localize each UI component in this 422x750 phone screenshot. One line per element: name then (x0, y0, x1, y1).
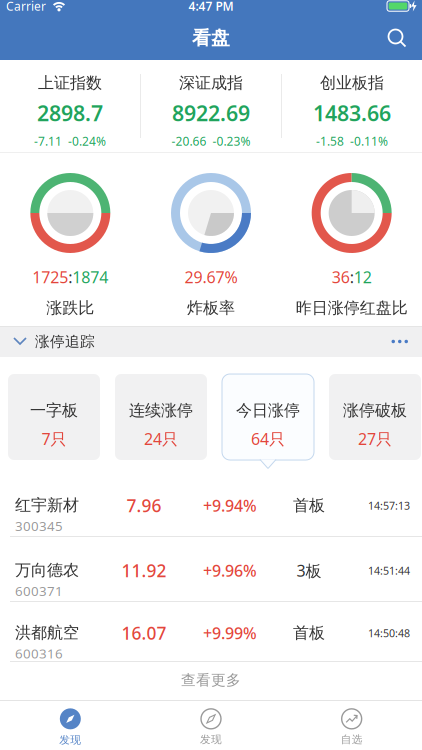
staticText: 发现 (200, 733, 222, 746)
staticText: 深证成指 (179, 73, 243, 93)
staticText: 涨跌比 (46, 298, 94, 318)
button[interactable]: 自选 (281, 702, 422, 750)
staticText: 7只 (41, 428, 66, 449)
staticText: 炸板率 (187, 298, 235, 318)
staticText: 27只 (358, 428, 392, 449)
staticText: +9.94% (203, 495, 257, 516)
staticText: 今日涨停 (236, 400, 300, 420)
staticText: 首板 (293, 496, 325, 515)
staticText: 涨停破板 (343, 400, 407, 420)
staticText: 2898.7 (37, 99, 103, 127)
staticText: 首板 (293, 623, 325, 643)
button[interactable]: More (391, 340, 422, 343)
button[interactable]: 创业板指 (282, 60, 422, 152)
staticText: +9.96% (203, 560, 257, 581)
staticText: 12 (354, 266, 372, 288)
staticText: 洪都航空 (15, 623, 79, 642)
staticText: 看盘 (192, 26, 230, 49)
staticText: 24只 (144, 428, 178, 449)
staticText: +9.99% (203, 622, 257, 644)
staticText: 300345 (15, 517, 63, 535)
staticText: -7.11 -0.24% (34, 133, 106, 149)
staticText: 14:51:44 (368, 563, 410, 578)
button[interactable]: 发现 (141, 702, 281, 750)
button[interactable]: 今日涨停 (222, 374, 314, 460)
staticText: 4:47 PM (188, 0, 233, 14)
button[interactable]: Search (386, 27, 422, 49)
staticText: 3板 (296, 560, 321, 581)
staticText: 万向德农 (15, 560, 79, 580)
staticText: Carrier (6, 0, 46, 14)
button[interactable]: 一字板 (8, 374, 100, 460)
staticText: 1725 (32, 266, 68, 288)
staticText: 红宇新材 (15, 495, 79, 515)
button[interactable]: 红宇新材 (0, 472, 422, 537)
staticText: 64只 (251, 428, 285, 449)
staticText: 1483.66 (313, 99, 391, 127)
button[interactable]: 涨停破板 (329, 374, 421, 460)
staticText: 14:57:13 (368, 498, 410, 513)
staticText: 14:50:48 (368, 626, 410, 640)
button[interactable]: 洪都航空 (0, 602, 422, 662)
button[interactable]: 连续涨停 (115, 374, 207, 460)
button[interactable]: 上证指数 (0, 60, 140, 152)
staticText: 7.96 (126, 494, 161, 517)
staticText: 600316 (15, 644, 63, 662)
button[interactable]: 深证成指 (141, 60, 281, 152)
staticText: 600371 (15, 582, 63, 600)
staticText: 11.92 (121, 559, 166, 582)
staticText: -20.66 -0.23% (171, 133, 250, 149)
staticText: 查看更多 (181, 671, 241, 689)
button[interactable]: Collapse (0, 332, 95, 350)
staticText: 连续涨停 (129, 400, 193, 420)
staticText: -1.58 -0.11% (316, 133, 388, 149)
staticText: 29.67% (184, 266, 237, 288)
button[interactable]: 发现 (0, 702, 141, 750)
staticText: : (68, 266, 72, 288)
staticText: 自选 (341, 733, 363, 746)
staticText: 16.07 (121, 621, 166, 644)
staticText: 8922.69 (172, 99, 250, 127)
staticText: 涨停追踪 (35, 332, 95, 350)
staticText: 发现 (59, 733, 81, 746)
staticText: 上证指数 (38, 73, 102, 93)
staticText: : (350, 266, 354, 288)
staticText: 36 (332, 266, 350, 288)
button[interactable]: 查看更多 (0, 662, 422, 692)
button[interactable]: 万向德农 (0, 537, 422, 602)
staticText: 一字板 (30, 400, 78, 420)
staticText: 昨日涨停红盘比 (296, 298, 408, 318)
staticText: 创业板指 (320, 73, 384, 93)
staticText: 1874 (72, 266, 108, 288)
